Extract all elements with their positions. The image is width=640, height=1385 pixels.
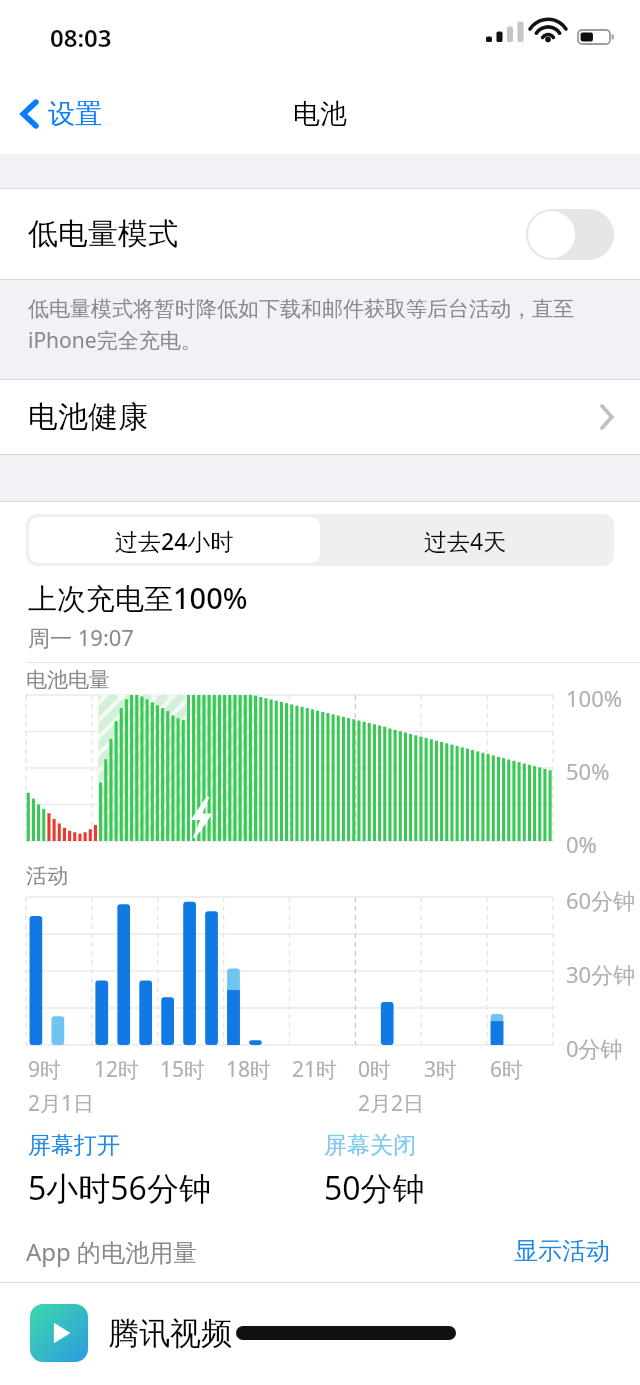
staticText: 5小时56分钟 [28,1166,211,1210]
button[interactable]: 低电量模式开关 [526,209,614,260]
staticText: 活动 [26,863,68,889]
button[interactable]: 过去4天 [320,517,611,563]
staticText: 21时 [292,1055,338,1084]
button[interactable]: 腾讯视频 [0,1283,640,1383]
staticText: 3时 [424,1055,458,1084]
staticText: 设置 [48,97,102,131]
staticText: 周一 19:07 [28,622,134,652]
staticText: 60分钟 [566,885,636,915]
staticText: 08:03 [50,21,112,54]
staticText: 0分钟 [566,1033,623,1063]
staticText: 电池健康 [28,398,148,436]
button[interactable]: 电池健康 [0,379,640,455]
staticText: 18时 [226,1055,272,1084]
staticText: 2月1日 [28,1089,95,1118]
staticText: 30分钟 [566,959,636,989]
staticText: 显示活动 [514,1236,610,1266]
staticText: 腾讯视频 [108,1314,232,1353]
staticText: 低电量模式将暂时降低如下载和邮件获取等后台活动，直至iPhone完全充电。 [28,296,604,355]
staticText: App 的电池用量 [26,1235,198,1268]
button[interactable]: 显示活动 [510,1232,614,1270]
staticText: 电池 [293,97,347,131]
staticText: 0时 [358,1055,392,1084]
staticText: 过去24小时 [115,525,234,556]
button[interactable]: 设置 [12,89,110,139]
staticText: 100% [566,683,623,713]
button[interactable]: 过去24小时 [29,517,320,563]
staticText: 6时 [490,1055,524,1084]
staticText: 电池电量 [26,667,110,693]
staticText: 0% [566,829,597,859]
button[interactable]: 低电量模式 [0,188,640,280]
staticText: 2月2日 [358,1089,425,1118]
staticText: 屏幕关闭 [324,1131,416,1160]
staticText: 过去4天 [424,525,507,556]
staticText: 15时 [160,1055,206,1084]
staticText: 低电量模式 [28,215,178,253]
staticText: 9时 [28,1055,62,1084]
staticText: 屏幕打开 [28,1131,120,1160]
staticText: 12时 [94,1055,140,1084]
staticText: 上次充电至100% [28,578,248,618]
staticText: 50% [566,756,610,786]
staticText: 50分钟 [324,1166,425,1210]
